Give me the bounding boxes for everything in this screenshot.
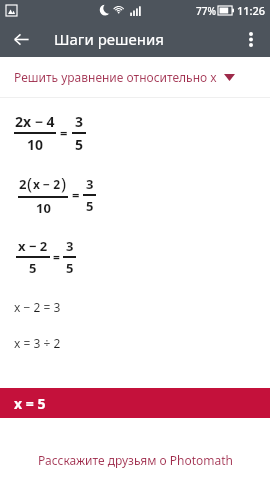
staticText: 2 bbox=[19, 175, 27, 193]
staticText: 77% bbox=[196, 4, 216, 18]
staticText: 10 bbox=[27, 135, 44, 154]
staticText: ( bbox=[27, 172, 33, 195]
staticText: 5 bbox=[86, 197, 94, 215]
staticText: x − 2 bbox=[18, 237, 48, 255]
staticText: 2x − 4 bbox=[15, 112, 55, 131]
button[interactable]: x = 5 bbox=[0, 388, 270, 418]
staticText: 3 bbox=[86, 175, 94, 193]
staticText: x = 5 bbox=[14, 394, 46, 413]
staticText: 3 bbox=[75, 112, 84, 131]
button[interactable]: Решить уравнение относительно x bbox=[0, 57, 270, 97]
staticText: = bbox=[60, 124, 68, 142]
staticText: 10 bbox=[36, 199, 51, 217]
button[interactable]: Back bbox=[5, 23, 37, 55]
staticText: Решить уравнение относительно x bbox=[14, 69, 217, 85]
staticText: 5 bbox=[75, 135, 84, 154]
staticText: x = 3 ÷ 2 bbox=[14, 335, 61, 351]
staticText: 5 bbox=[66, 259, 74, 277]
button[interactable]: Расскажите друзьям о Photomath bbox=[0, 418, 270, 480]
staticText: = bbox=[72, 186, 80, 204]
staticText: = bbox=[53, 249, 60, 265]
button[interactable]: More options bbox=[235, 23, 267, 55]
staticText: x − 2 bbox=[33, 176, 61, 192]
staticText: 11:26 bbox=[237, 3, 266, 18]
staticText: x − 2 = 3 bbox=[14, 299, 61, 315]
staticText: ) bbox=[61, 172, 67, 195]
staticText: Шаги решения bbox=[54, 29, 164, 49]
staticText: Расскажите друзьям о Photomath bbox=[38, 452, 233, 468]
staticText: 5 bbox=[29, 259, 37, 277]
staticText: 3 bbox=[66, 237, 74, 255]
